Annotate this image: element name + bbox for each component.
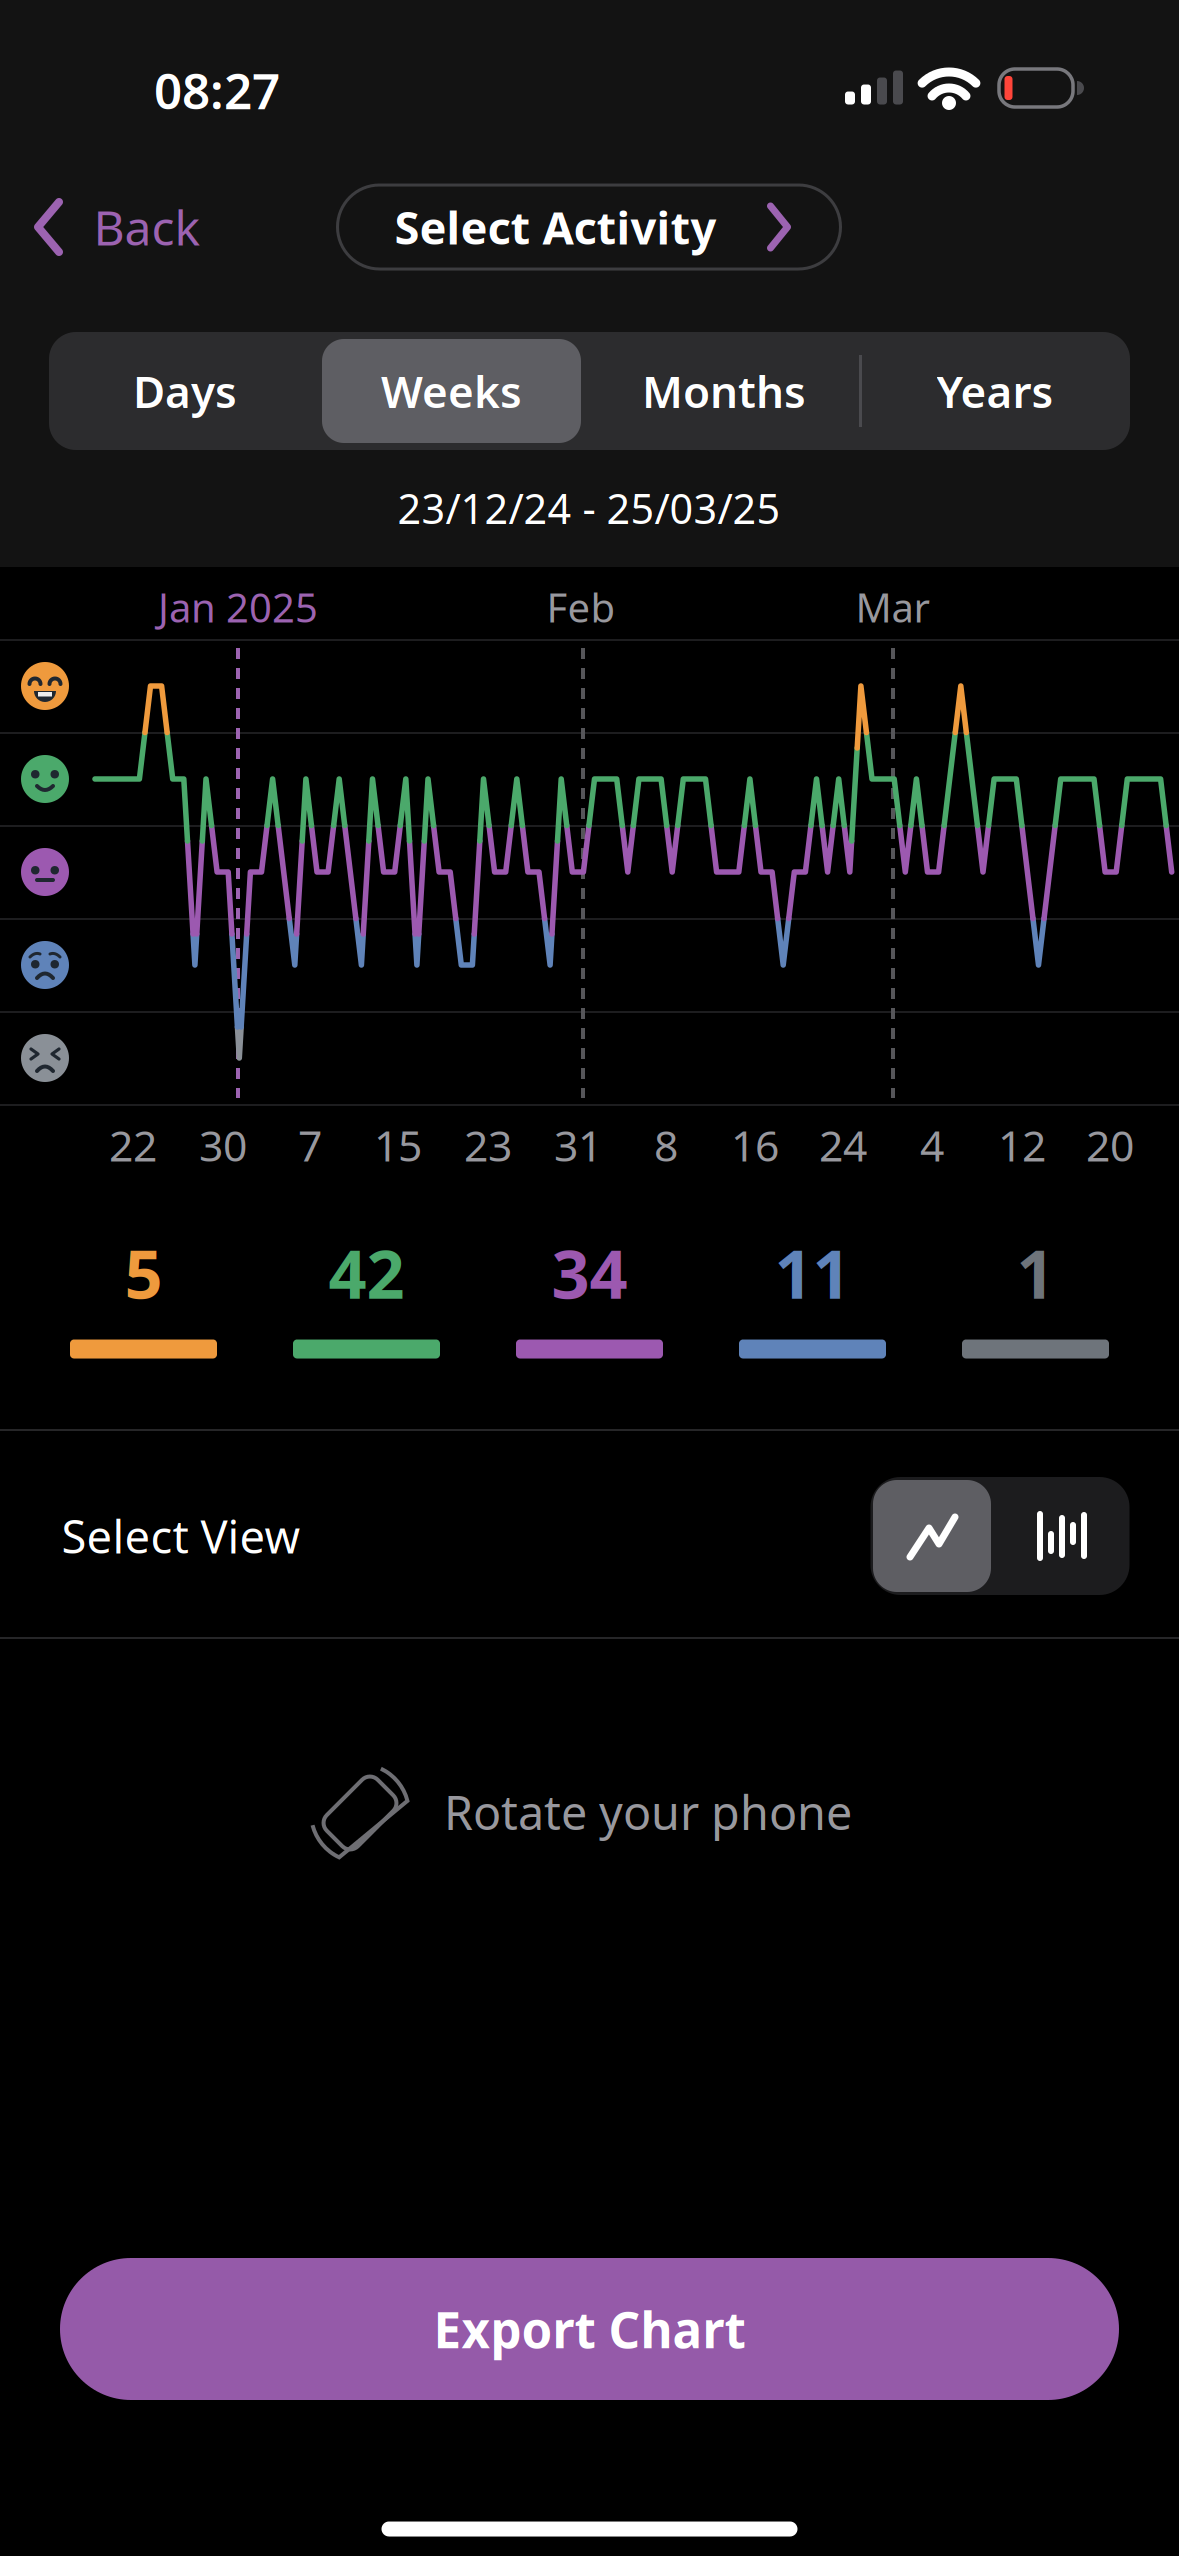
- staticText: 30: [199, 1117, 247, 1173]
- staticText: 12: [998, 1117, 1046, 1173]
- staticText: 5: [124, 1229, 162, 1317]
- staticText: 16: [731, 1117, 779, 1173]
- staticText: Select View: [61, 1506, 300, 1566]
- button[interactable]: Back: [32, 198, 202, 256]
- staticText: Select Activity: [394, 197, 716, 257]
- staticText: 20: [1086, 1117, 1134, 1173]
- staticText: Jan 2025: [158, 580, 318, 633]
- staticText: Days: [133, 362, 237, 420]
- staticText: 24: [819, 1117, 867, 1173]
- staticText: 7: [298, 1117, 322, 1173]
- staticText: Export Chart: [433, 2296, 745, 2362]
- staticText: 31: [554, 1117, 602, 1173]
- button[interactable]: Weeks: [322, 339, 581, 443]
- staticText: 23/12/24 - 25/03/25: [397, 481, 780, 535]
- button[interactable]: Years: [865, 339, 1125, 443]
- staticText: Feb: [546, 580, 615, 633]
- staticText: 1: [1016, 1229, 1054, 1317]
- button[interactable]: Select Activity: [337, 185, 840, 269]
- button[interactable]: Days: [55, 339, 315, 443]
- button[interactable]: Line chart view: [873, 1480, 991, 1592]
- staticText: 8: [654, 1117, 678, 1173]
- button[interactable]: Bar chart view: [1016, 1478, 1108, 1594]
- button[interactable]: Months: [594, 339, 854, 443]
- button[interactable]: Export Chart: [60, 2258, 1119, 2400]
- staticText: 11: [774, 1229, 850, 1317]
- staticText: 23: [464, 1117, 512, 1173]
- staticText: Back: [93, 195, 200, 259]
- staticText: 15: [374, 1117, 422, 1173]
- staticText: Years: [936, 362, 1053, 420]
- staticText: 08:27: [154, 57, 280, 123]
- staticText: Rotate your phone: [444, 1781, 852, 1843]
- staticText: Weeks: [381, 362, 522, 420]
- staticText: 22: [109, 1117, 157, 1173]
- staticText: 4: [920, 1117, 944, 1173]
- staticText: 42: [328, 1229, 404, 1317]
- staticText: 34: [551, 1229, 627, 1317]
- staticText: Mar: [855, 580, 930, 633]
- staticText: Months: [642, 362, 806, 420]
